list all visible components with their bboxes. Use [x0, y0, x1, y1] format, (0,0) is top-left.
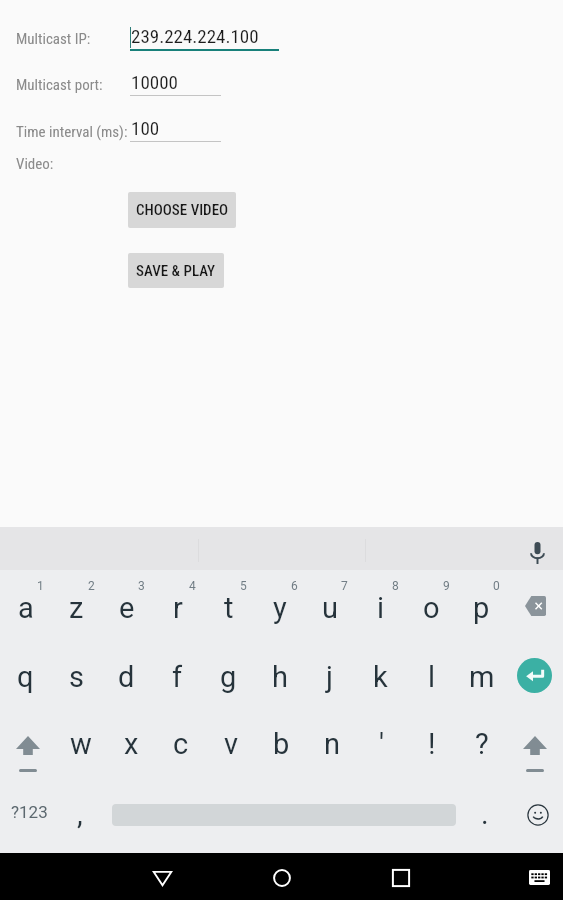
staticText: t — [224, 591, 234, 625]
staticText: Video: — [16, 155, 54, 173]
button[interactable]: Backspace — [507, 570, 563, 638]
button[interactable]: n — [307, 706, 357, 774]
button[interactable]: j — [304, 638, 355, 706]
staticText: g — [220, 660, 237, 694]
button[interactable]: g — [203, 638, 254, 706]
staticText: k — [373, 660, 388, 694]
button[interactable]: ?123 — [0, 774, 58, 842]
staticText: w — [70, 727, 92, 761]
staticText: 10000 — [131, 71, 178, 93]
button[interactable]: p — [456, 570, 507, 638]
staticText: 3 — [138, 579, 145, 593]
staticText: y — [273, 591, 287, 625]
staticText: n — [324, 727, 341, 761]
staticText: b — [273, 727, 290, 761]
staticText: 100 — [131, 117, 160, 139]
button[interactable]: l — [406, 638, 457, 706]
button[interactable]: Home — [258, 862, 306, 894]
button[interactable]: , — [58, 774, 102, 842]
button[interactable]: k — [355, 638, 406, 706]
staticText: j — [326, 660, 333, 694]
button[interactable]: b — [256, 706, 306, 774]
button[interactable]: y — [254, 570, 305, 638]
staticText: l — [428, 660, 436, 694]
staticText: c — [173, 727, 189, 761]
staticText: a — [18, 591, 34, 625]
staticText: Multicast port: — [16, 76, 103, 94]
button[interactable]: Voice input — [522, 537, 553, 568]
button[interactable]: f — [152, 638, 203, 706]
button[interactable]: ! — [407, 706, 457, 774]
staticText: ?123 — [11, 802, 48, 822]
staticText: m — [469, 660, 495, 694]
button[interactable]: i — [355, 570, 406, 638]
button[interactable]: z — [51, 570, 102, 638]
staticText: f — [172, 660, 183, 694]
staticText: v — [224, 727, 239, 761]
button[interactable]: v — [206, 706, 256, 774]
button[interactable]: CHOOSE VIDEO — [128, 192, 236, 228]
staticText: Time interval (ms): — [16, 123, 128, 141]
staticText: d — [118, 660, 135, 694]
staticText: 5 — [240, 579, 247, 593]
staticText: , — [77, 797, 83, 831]
staticText: e — [119, 591, 135, 625]
button[interactable]: ? — [457, 706, 507, 774]
staticText: i — [377, 591, 385, 625]
button[interactable]: q — [0, 638, 51, 706]
staticText: r — [173, 591, 183, 625]
button[interactable]: . — [463, 774, 507, 842]
staticText: SAVE & PLAY — [136, 262, 216, 280]
staticText: 239.224.224.100 — [131, 25, 259, 47]
button[interactable]: SAVE & PLAY — [128, 253, 224, 288]
button[interactable]: w — [56, 706, 106, 774]
staticText: 9 — [443, 579, 450, 593]
button[interactable]: t — [203, 570, 254, 638]
staticText: u — [322, 591, 338, 625]
staticText: x — [124, 727, 139, 761]
button[interactable]: Enter — [507, 638, 563, 706]
staticText: CHOOSE VIDEO — [136, 201, 229, 219]
button[interactable]: Shift — [507, 706, 563, 774]
staticText: . — [481, 797, 489, 831]
button[interactable]: Shift — [0, 706, 56, 774]
button[interactable]: x — [106, 706, 156, 774]
staticText: ? — [475, 727, 489, 761]
staticText: ! — [428, 727, 436, 761]
button[interactable]: h — [254, 638, 305, 706]
button[interactable]: o — [406, 570, 457, 638]
staticText: z — [69, 591, 84, 625]
button[interactable]: m — [456, 638, 507, 706]
button[interactable]: Back — [138, 862, 186, 894]
staticText: q — [17, 660, 34, 694]
staticText: ' — [379, 727, 385, 761]
staticText: o — [423, 591, 440, 625]
button[interactable]: ' — [357, 706, 407, 774]
staticText: Multicast IP: — [16, 30, 91, 48]
staticText: h — [272, 660, 288, 694]
staticText: p — [473, 591, 490, 625]
staticText: 0 — [493, 579, 500, 593]
button[interactable]: Recent apps — [377, 862, 425, 894]
button[interactable]: a — [0, 570, 51, 638]
button[interactable]: Emoji — [507, 774, 563, 842]
button[interactable]: d — [101, 638, 152, 706]
button[interactable]: Hide keyboard — [515, 861, 563, 893]
staticText: 8 — [392, 579, 399, 593]
button[interactable]: e — [101, 570, 152, 638]
staticText: 2 — [88, 579, 95, 593]
button[interactable]: u — [304, 570, 355, 638]
staticText: 6 — [291, 579, 298, 593]
staticText: 7 — [341, 579, 348, 593]
staticText: 4 — [189, 579, 196, 593]
button[interactable]: c — [156, 706, 206, 774]
button[interactable]: r — [152, 570, 203, 638]
staticText: 1 — [37, 579, 44, 593]
button[interactable]: s — [51, 638, 102, 706]
staticText: s — [69, 660, 84, 694]
